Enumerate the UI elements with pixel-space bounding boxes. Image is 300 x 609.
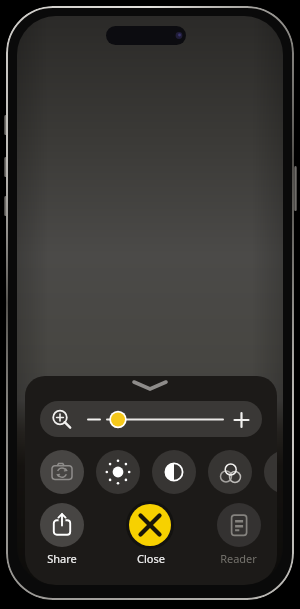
button[interactable]	[152, 450, 196, 494]
button[interactable]	[96, 450, 140, 494]
button[interactable]	[40, 450, 84, 494]
button[interactable]	[126, 501, 174, 549]
button[interactable]: Reader	[201, 550, 276, 566]
button[interactable]: Close	[113, 550, 188, 566]
staticText: Close	[137, 551, 165, 566]
button[interactable]	[208, 450, 252, 494]
button[interactable]	[217, 503, 261, 547]
staticText: Reader	[220, 551, 257, 566]
button[interactable]	[40, 503, 84, 547]
button[interactable]	[130, 380, 170, 392]
button[interactable]	[264, 450, 277, 494]
button[interactable]	[40, 401, 262, 437]
button[interactable]: Share	[25, 550, 99, 566]
staticText: Share	[47, 551, 77, 566]
